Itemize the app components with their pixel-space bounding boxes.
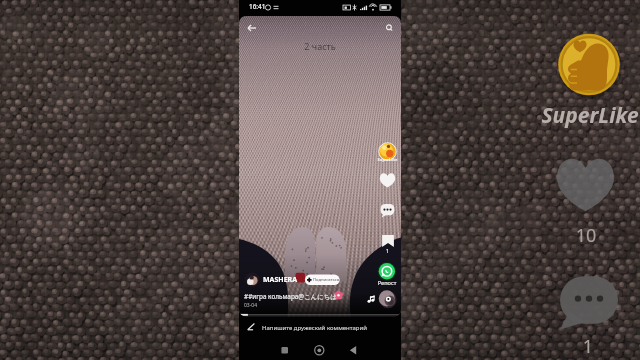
staticText: Напишите дружеский комментарий bbox=[262, 324, 367, 332]
button[interactable]: Save bbox=[379, 234, 395, 250]
button[interactable]: SuperLike bbox=[538, 101, 640, 130]
staticText: ##игра кольмара@こんにちは bbox=[244, 292, 337, 301]
button[interactable]: Follow bbox=[305, 275, 340, 286]
staticText: 1 bbox=[378, 248, 397, 255]
button[interactable]: Репост bbox=[375, 279, 399, 287]
button[interactable]: Comments bbox=[560, 274, 618, 324]
button[interactable]: Back bbox=[345, 341, 362, 358]
button[interactable]: Sound bbox=[379, 291, 397, 309]
staticText: Подписаться bbox=[313, 277, 340, 283]
button[interactable]: Author avatar bbox=[245, 272, 260, 287]
button[interactable]: Search bbox=[379, 18, 399, 38]
staticText: Репост bbox=[375, 279, 399, 287]
button[interactable]: Back bbox=[244, 18, 264, 38]
button[interactable]: Recents bbox=[277, 341, 293, 357]
staticText: MASHERA bbox=[263, 275, 298, 285]
staticText: 16:41 bbox=[249, 2, 266, 11]
staticText: 03-04 bbox=[244, 302, 258, 309]
button[interactable]: Home bbox=[311, 341, 329, 359]
staticText: SuperLike bbox=[538, 101, 640, 130]
button[interactable]: Super like bbox=[558, 34, 620, 96]
button[interactable]: Share to WhatsApp bbox=[378, 262, 397, 281]
staticText: 2 часть bbox=[239, 40, 401, 52]
button[interactable]: Напишите дружеский комментарий bbox=[262, 324, 367, 332]
button[interactable]: Profile bbox=[378, 142, 396, 160]
staticText: 1 bbox=[566, 334, 610, 359]
button[interactable]: Like bbox=[378, 172, 396, 190]
staticText: SuperLike bbox=[372, 157, 403, 162]
button[interactable]: Like bbox=[557, 158, 614, 210]
button[interactable]: Comment bbox=[378, 201, 396, 219]
button[interactable]: MASHERA bbox=[263, 275, 298, 285]
staticText: 10 bbox=[564, 223, 608, 248]
